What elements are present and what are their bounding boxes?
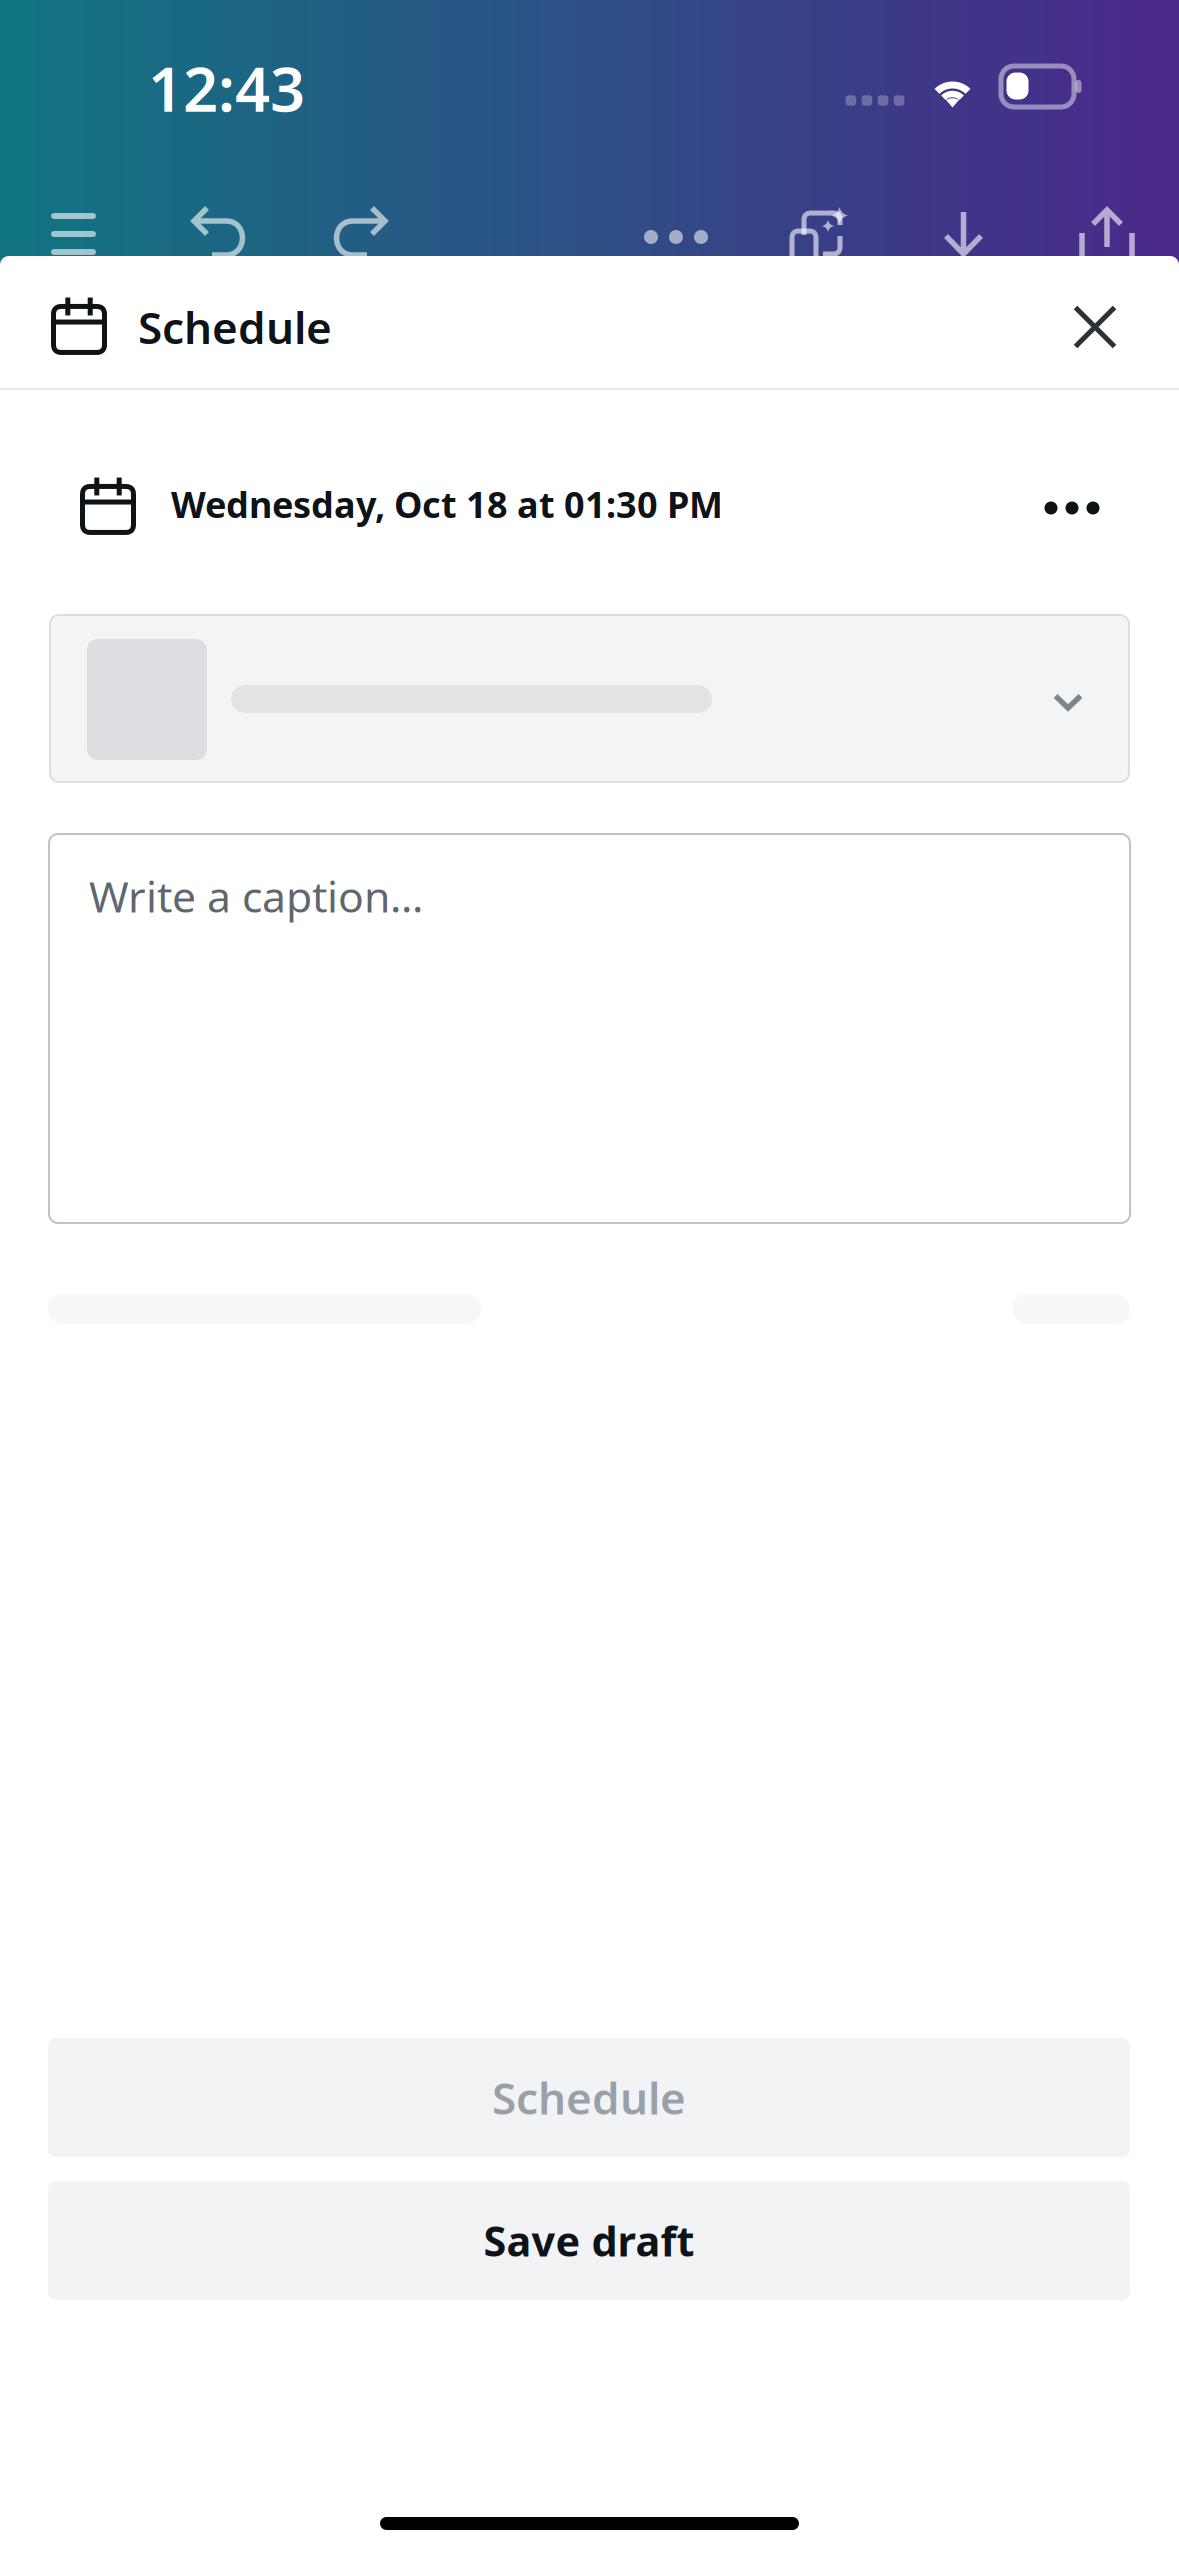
button[interactable]: Schedule <box>48 2038 1130 2157</box>
button[interactable]: Write a caption <box>49 834 1130 1223</box>
button[interactable]: Close <box>1040 272 1150 382</box>
staticText: Save draft <box>483 2213 694 2268</box>
button[interactable]: Wednesday, Oct 18 at 01:30 PM <box>40 463 1139 553</box>
staticText: Wednesday, Oct 18 at 01:30 PM <box>171 480 723 528</box>
staticText: 12:43 <box>148 47 305 129</box>
staticText: Schedule <box>138 298 332 356</box>
button[interactable]: Save draft <box>48 2181 1130 2300</box>
button[interactable]: Select design <box>50 615 1129 782</box>
staticText: Write a caption... <box>89 868 423 924</box>
staticText: Schedule <box>492 2068 686 2127</box>
